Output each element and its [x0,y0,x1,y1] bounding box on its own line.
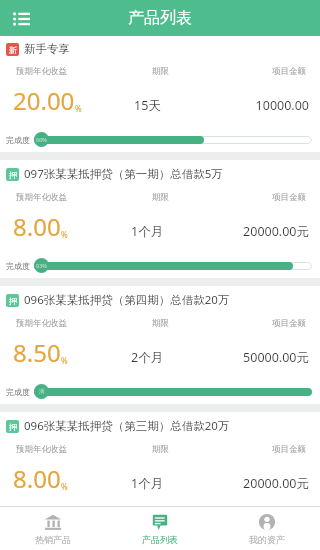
button[interactable]: 押 [0,286,320,404]
staticText: 期限 [152,192,169,203]
staticText: 期限 [152,318,169,329]
staticText: 20000.00元 [243,475,309,492]
staticText: 我的资产 [249,534,285,545]
button[interactable]: 我的资产 [213,507,320,550]
staticText: % [61,481,68,492]
staticText: 60% [36,136,47,143]
staticText: 93% [36,262,47,269]
staticText: 项目金额 [272,318,306,329]
staticText: % [75,103,82,114]
staticText: 期限 [152,444,169,455]
staticText: 8.00 [13,462,61,495]
staticText: 8.00 [13,210,61,243]
staticText: 50000.00元 [243,349,309,366]
staticText: % [61,355,68,366]
staticText: 预期年化收益 [16,66,67,77]
staticText: 押 [9,170,17,180]
button[interactable]: 新 [0,36,320,152]
staticText: 096张某某抵押贷（第四期）总借款20万 [24,292,230,308]
staticText: 15天 [134,97,161,114]
staticText: 预期年化收益 [16,318,67,329]
button[interactable]: 押 [0,160,320,278]
staticText: 预期年化收益 [16,444,67,455]
staticText: 产品列表 [142,534,178,545]
staticText: 097张某某抵押贷（第一期）总借款5万 [24,166,223,182]
button[interactable]: 产品列表 [106,507,213,550]
staticText: 1个月 [131,223,164,240]
staticText: 产品列表 [128,8,192,28]
staticText: 期限 [152,66,169,77]
staticText: 完成度 [6,261,30,271]
staticText: 满 [39,388,45,395]
button[interactable]: 押 [0,412,320,506]
staticText: 20000.00元 [243,223,309,240]
staticText: 1个月 [131,475,164,492]
staticText: 8.50 [13,336,61,369]
staticText: 新手专享 [24,42,70,56]
staticText: 热销产品 [35,534,71,545]
staticText: % [61,229,68,240]
staticText: 完成度 [6,135,30,145]
staticText: 押 [9,296,17,306]
staticText: 押 [9,422,17,432]
staticText: 096张某某抵押贷（第三期）总借款20万 [24,418,230,434]
staticText: 10000.00 [255,97,309,114]
staticText: 项目金额 [272,66,306,77]
staticText: 项目金额 [272,444,306,455]
staticText: 预期年化收益 [16,192,67,203]
staticText: 20.00 [13,84,75,117]
button[interactable]: 热销产品 [0,507,106,550]
staticText: 2个月 [131,349,164,366]
button[interactable]: Menu [5,2,37,34]
staticText: 完成度 [6,387,30,397]
staticText: 新 [9,45,17,55]
staticText: 项目金额 [272,192,306,203]
